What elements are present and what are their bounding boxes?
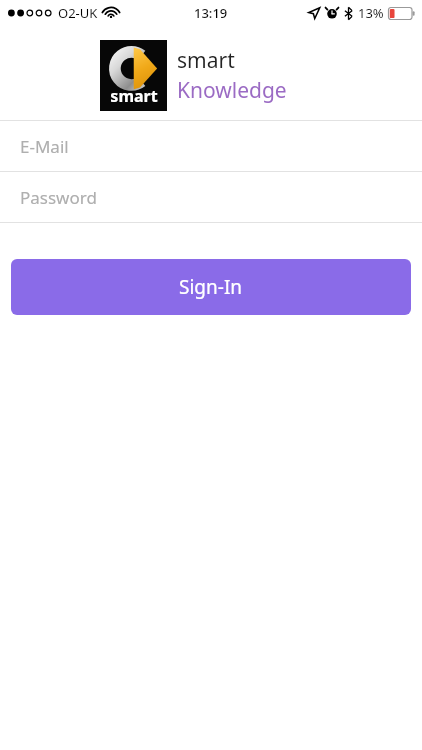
button[interactable]: Sign-In bbox=[11, 259, 411, 315]
button[interactable]: E-Mail bbox=[0, 121, 422, 171]
staticText: O2-UK bbox=[58, 4, 98, 22]
staticText: Password bbox=[20, 186, 97, 209]
staticText: Knowledge bbox=[177, 76, 287, 105]
staticText: 13% bbox=[358, 4, 384, 22]
staticText: smart bbox=[177, 46, 235, 75]
button[interactable]: Password bbox=[0, 172, 422, 222]
staticText: E-Mail bbox=[20, 135, 69, 158]
staticText: 13:19 bbox=[194, 4, 228, 22]
staticText: Sign-In bbox=[179, 274, 243, 300]
staticText: smart bbox=[110, 85, 158, 107]
